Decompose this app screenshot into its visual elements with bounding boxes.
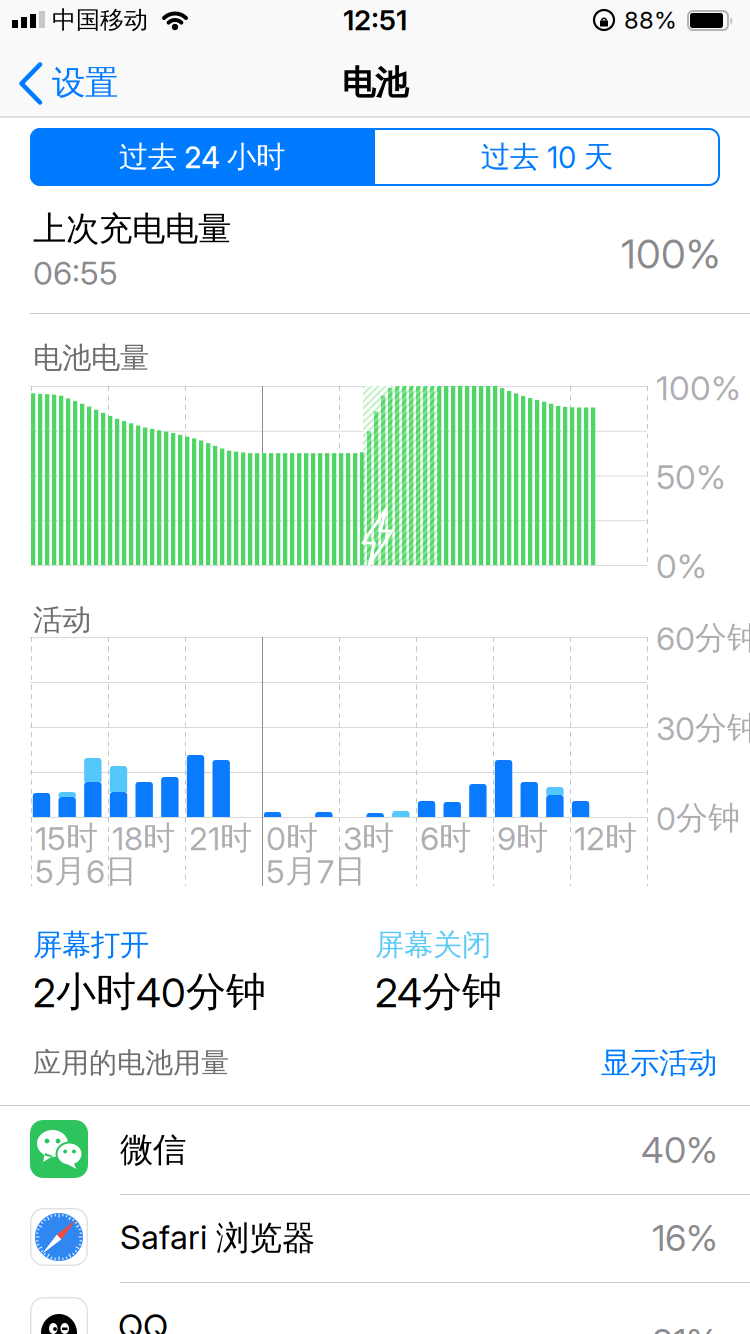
staticText: 100% [621,230,720,278]
staticText: 屏幕打开 [33,927,149,963]
staticText: 5月7日 [266,851,366,891]
staticText: 0时 [266,818,318,858]
staticText: 中国移动 [52,5,148,35]
staticText: 5月6日 [35,851,137,891]
staticText: 微信 [120,1129,186,1170]
staticText: 88% [624,6,677,34]
staticText: 显示活动 [601,1045,717,1081]
staticText: 上次充电电量 [33,208,231,249]
staticText: 电池电量 [33,340,149,376]
staticText: 活动 [33,602,91,638]
staticText: QQ [118,1306,168,1334]
staticText: 设置 [52,62,118,103]
staticText: 18时 [112,818,175,858]
staticText: 12:51 [343,3,407,36]
staticText: 12时 [574,818,637,858]
staticText: 9时 [497,818,548,858]
staticText: 40% [641,1129,718,1171]
staticText: 应用的电池用量 [33,1046,229,1080]
staticText: 过去 24 小时 [119,139,285,175]
staticText: 0分钟 [656,798,740,838]
staticText: 0% [656,546,707,586]
staticText: 2小时40分钟 [33,967,266,1016]
staticText: 21时 [189,818,252,858]
staticText: 30分钟 [656,708,750,748]
staticText: 06:55 [33,254,118,292]
staticText: 100% [656,368,741,408]
staticText: 电池 [342,62,408,103]
staticText: 过去 10 天 [481,139,613,175]
staticText: 50% [656,457,726,497]
staticText: 21% [652,1321,718,1334]
staticText: Safari 浏览器 [120,1217,315,1259]
staticText: 屏幕关闭 [375,927,491,963]
staticText: 24分钟 [375,967,502,1016]
staticText: 16% [652,1217,718,1259]
staticText: 3时 [343,818,394,858]
staticText: 60分钟 [656,618,750,658]
staticText: 6时 [420,818,471,858]
staticText: 15时 [35,818,98,858]
